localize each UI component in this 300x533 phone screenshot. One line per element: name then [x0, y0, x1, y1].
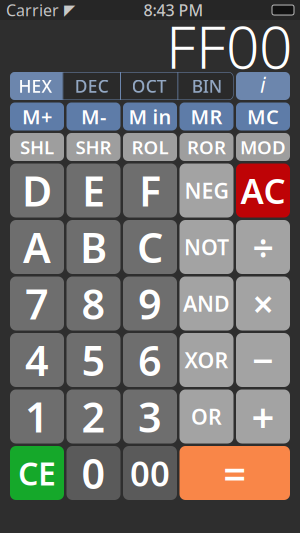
staticText: FF00 — [166, 7, 292, 85]
staticText: NEG — [184, 176, 228, 205]
button[interactable]: 7 — [10, 276, 64, 330]
staticText: M+ — [22, 103, 52, 130]
staticText: HEX — [18, 74, 52, 97]
staticText: E — [82, 163, 105, 218]
button[interactable]: SHR — [66, 133, 120, 161]
button[interactable]: 9 — [123, 276, 177, 330]
staticText: 2 — [81, 389, 105, 444]
staticText: 8:43 PM — [143, 0, 203, 21]
staticText: B — [80, 220, 107, 274]
button[interactable]: 0 — [66, 446, 120, 500]
staticText: ROR — [187, 135, 226, 159]
staticText: SHR — [75, 135, 111, 159]
staticText: C — [137, 220, 163, 274]
staticText: MOD — [240, 135, 286, 159]
button[interactable]: MC — [236, 102, 290, 130]
staticText: Carrier — [6, 0, 59, 21]
button[interactable]: A — [10, 220, 64, 274]
button[interactable]: − — [236, 333, 290, 387]
staticText: ÷ — [252, 222, 273, 272]
button[interactable]: NOT — [179, 220, 233, 274]
staticText: 3 — [138, 389, 162, 444]
button[interactable]: 1 — [10, 389, 64, 443]
staticText: BIN — [192, 74, 222, 97]
staticText: 5 — [81, 333, 105, 387]
staticText: F — [139, 163, 161, 218]
staticText: CE — [18, 452, 56, 494]
button[interactable]: C — [123, 220, 177, 274]
staticText: ◤ — [59, 2, 75, 18]
button[interactable]: 6 — [123, 333, 177, 387]
button[interactable]: OR — [179, 389, 233, 443]
button[interactable]: SHL — [10, 133, 64, 161]
staticText: + — [251, 390, 274, 443]
button[interactable]: B — [66, 220, 120, 274]
staticText: M- — [81, 103, 106, 130]
staticText: AC — [240, 167, 285, 213]
staticText: OR — [191, 402, 222, 431]
button[interactable]: OCT — [121, 72, 177, 100]
staticText: OCT — [132, 74, 167, 97]
button[interactable]: 5 — [66, 333, 120, 387]
button[interactable]: MR — [179, 102, 233, 130]
button[interactable]: ROL — [123, 133, 177, 161]
staticText: XOR — [184, 346, 228, 374]
button[interactable]: + — [236, 389, 290, 443]
staticText: 𝑖 — [260, 75, 266, 97]
staticText: 8 — [81, 276, 105, 331]
staticText: NOT — [184, 233, 229, 261]
button[interactable]: = — [179, 446, 290, 500]
button[interactable]: CE — [10, 446, 64, 500]
button[interactable]: AND — [179, 276, 233, 330]
staticText: A — [23, 220, 51, 274]
button[interactable]: 8 — [66, 276, 120, 330]
staticText: 1 — [25, 389, 49, 444]
button[interactable]: 00 — [123, 446, 177, 500]
button[interactable]: HEX — [8, 72, 62, 100]
staticText: − — [252, 335, 274, 385]
button[interactable]: Info — [236, 72, 290, 100]
staticText: × — [252, 279, 273, 328]
button[interactable]: D — [10, 163, 64, 217]
button[interactable]: ROR — [179, 133, 233, 161]
button[interactable]: × — [236, 276, 290, 330]
staticText: 6 — [138, 333, 162, 387]
button[interactable]: ÷ — [236, 220, 290, 274]
button[interactable]: DEC — [63, 72, 120, 100]
button[interactable]: M+ — [10, 102, 64, 130]
button[interactable]: BIN — [178, 72, 235, 100]
staticText: 9 — [138, 276, 162, 331]
button[interactable]: AC — [236, 163, 290, 217]
staticText: AND — [183, 289, 230, 318]
button[interactable]: M- — [66, 102, 120, 130]
button[interactable]: 4 — [10, 333, 64, 387]
staticText: SHL — [20, 135, 54, 159]
button[interactable]: M in — [123, 102, 177, 130]
button[interactable]: MOD — [236, 133, 290, 161]
button[interactable]: NEG — [179, 163, 233, 217]
staticText: MC — [247, 103, 279, 130]
staticText: 00 — [130, 450, 170, 496]
staticText: MR — [190, 103, 222, 130]
staticText: 7 — [25, 276, 49, 331]
staticText: ROL — [131, 135, 168, 159]
button[interactable]: E — [66, 163, 120, 217]
button[interactable]: F — [123, 163, 177, 217]
staticText: M in — [128, 103, 171, 130]
staticText: = — [223, 446, 246, 499]
button[interactable]: XOR — [179, 333, 233, 387]
staticText: 4 — [25, 333, 49, 387]
button[interactable]: 2 — [66, 389, 120, 443]
staticText: 0 — [81, 446, 105, 500]
staticText: DEC — [75, 74, 109, 97]
button[interactable]: 3 — [123, 389, 177, 443]
staticText: D — [22, 163, 52, 218]
